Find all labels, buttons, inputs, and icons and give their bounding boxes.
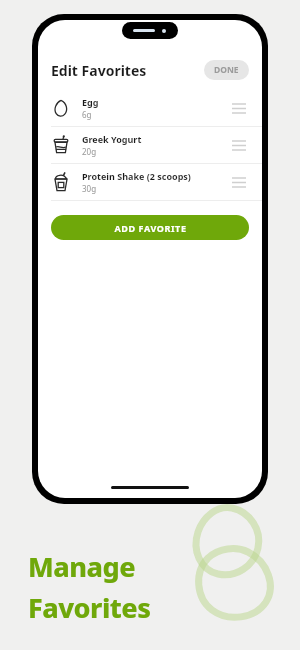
staticText: Favorites xyxy=(28,589,151,626)
button[interactable]: Egg xyxy=(38,90,262,126)
button[interactable]: Protein Shake (2 scoops) xyxy=(38,164,262,200)
button[interactable]: DONE xyxy=(204,60,249,80)
staticText: Greek Yogurt xyxy=(82,133,142,145)
staticText: 6g xyxy=(82,109,92,120)
button[interactable]: Reorder Greek Yogurt xyxy=(229,135,249,155)
staticText: 20g xyxy=(82,146,97,157)
button[interactable]: Greek Yogurt xyxy=(38,127,262,163)
button[interactable]: Reorder Protein Shake (2 scoops) xyxy=(229,172,249,192)
staticText: DONE xyxy=(214,64,239,76)
button[interactable]: Reorder Egg xyxy=(229,98,249,118)
staticText: Manage xyxy=(28,548,136,585)
button[interactable]: ADD FAVORITE xyxy=(51,215,249,240)
staticText: 30g xyxy=(82,183,97,194)
staticText: Edit Favorites xyxy=(51,61,147,80)
staticText: Egg xyxy=(82,96,99,108)
staticText: ADD FAVORITE xyxy=(114,222,187,234)
staticText: Protein Shake (2 scoops) xyxy=(82,170,191,182)
